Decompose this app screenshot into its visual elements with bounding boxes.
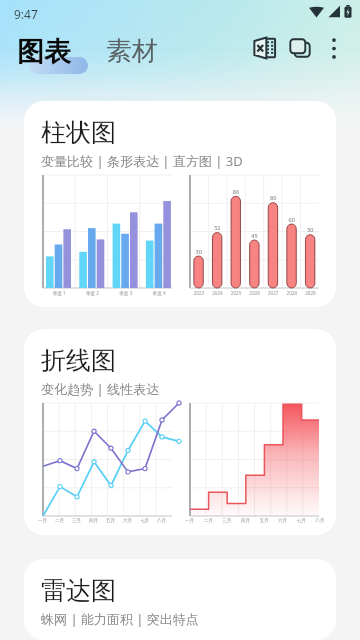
staticText: 变化趋势 | 线性表达	[41, 380, 159, 398]
staticText: 素材	[106, 35, 158, 68]
button[interactable]: More options	[318, 32, 350, 64]
button[interactable]: Export to Excel	[246, 30, 282, 66]
staticText: 折线图	[41, 345, 116, 376]
staticText: 9:47	[14, 6, 38, 22]
staticText: 变量比较 | 条形表达 | 直方图 | 3D	[41, 152, 243, 170]
button[interactable]: 素材	[106, 35, 158, 69]
button[interactable]: 图表	[17, 35, 76, 69]
button[interactable]: 折线图	[24, 329, 336, 535]
staticText: 柱状图	[41, 117, 116, 148]
staticText: 蛛网 | 能力面积 | 突出特点	[41, 610, 199, 628]
staticText: 雷达图	[41, 575, 116, 606]
button[interactable]: 柱状图	[24, 101, 336, 307]
button[interactable]: Templates	[282, 30, 318, 66]
button[interactable]: 雷达图	[24, 559, 336, 640]
staticText: 图表	[17, 35, 71, 69]
